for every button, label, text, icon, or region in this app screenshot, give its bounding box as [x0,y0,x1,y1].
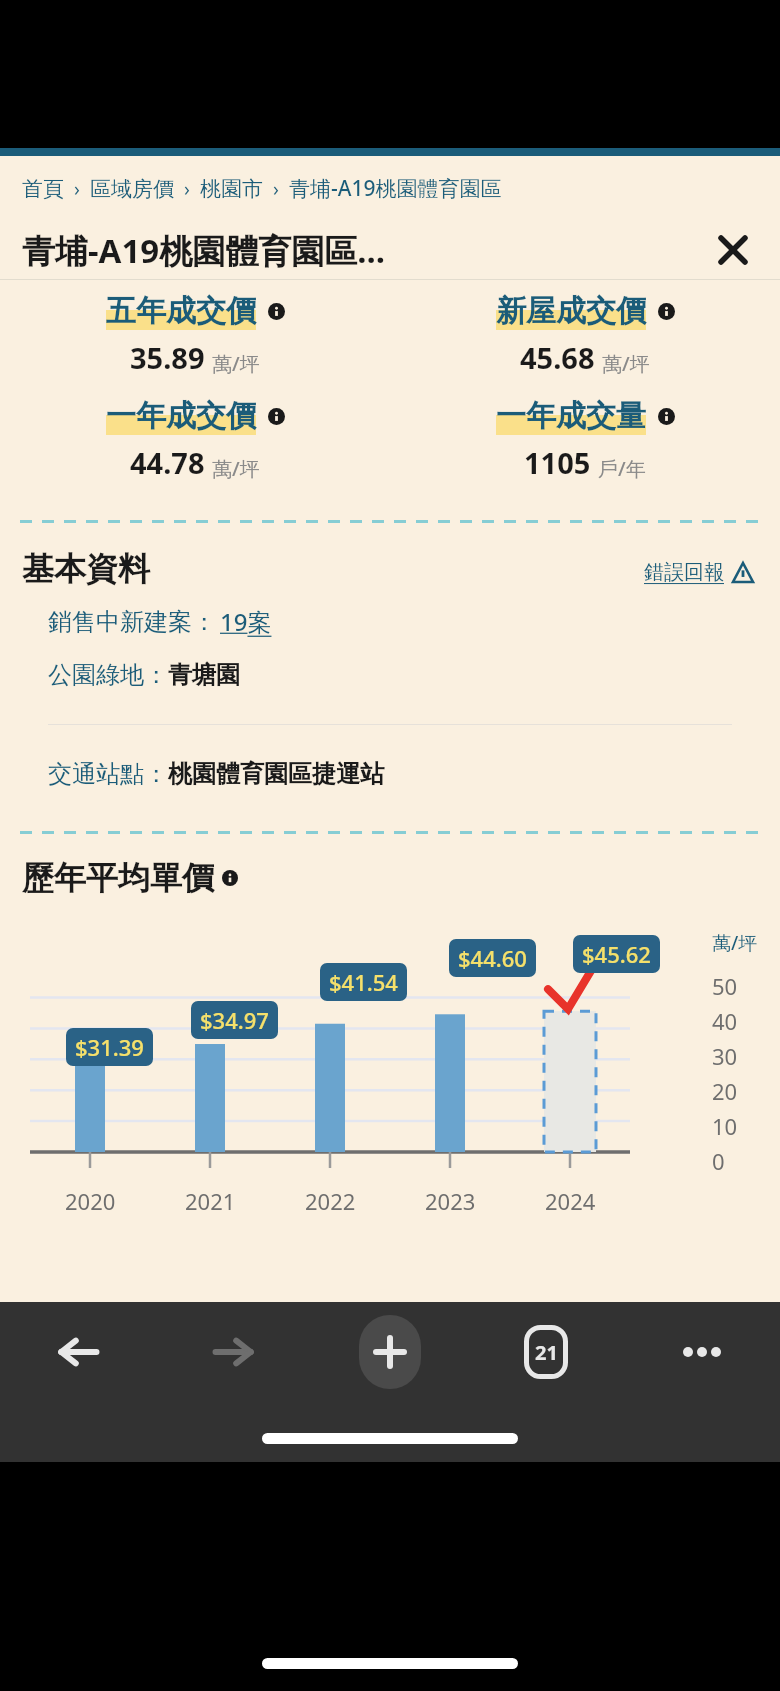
staticText: 錯誤回報 [644,560,724,585]
button[interactable]: 一年成交量 [390,395,780,484]
button[interactable]: Tabs, 21 open [468,1302,624,1402]
button[interactable]: Back [0,1302,156,1402]
staticText: 0 [712,1146,725,1176]
staticText: 2022 [305,1186,356,1216]
staticText: 2024 [545,1186,596,1216]
button[interactable]: 19案 [220,605,272,638]
staticText: 一年成交價 [106,397,256,435]
staticText: 萬/坪 [212,350,260,377]
staticText: 萬/坪 [712,930,758,956]
staticText: $45.62 [582,939,651,969]
button[interactable]: 區域房價 [90,176,174,202]
staticText: 20 [712,1076,738,1106]
button[interactable]: New tab [312,1302,468,1402]
staticText: 45.68 [520,338,595,377]
staticText: $34.97 [200,1005,269,1035]
staticText: $31.39 [75,1032,144,1062]
staticText: 青埔-A19桃園體育園區... [22,228,710,273]
staticText: 10 [712,1111,738,1141]
staticText: 萬/坪 [602,350,650,377]
staticText: 50 [712,971,738,1001]
staticText: 30 [712,1041,738,1071]
staticText: 銷售中新建案： [48,607,216,637]
staticText: › [174,176,200,202]
staticText: 萬/坪 [212,455,260,482]
staticText: 21 [535,1339,558,1366]
staticText: 2020 [65,1186,116,1216]
staticText: 公園綠地： [48,660,168,690]
staticText: 2023 [425,1186,476,1216]
staticText: 交通站點： [48,759,168,789]
staticText: › [64,176,90,202]
button[interactable]: Close [710,227,756,273]
staticText: 戶/年 [598,455,646,482]
staticText: 40 [712,1006,738,1036]
button[interactable]: 五年成交價 [0,290,390,379]
button[interactable]: 一年成交價 [0,395,390,484]
staticText: 44.78 [130,443,205,482]
button[interactable]: 桃園市 [200,176,263,202]
staticText: › [263,176,289,202]
staticText: 青塘園 [168,660,240,690]
staticText: 新屋成交價 [496,292,646,330]
button[interactable]: 新屋成交價 [390,290,780,379]
button[interactable]: 錯誤回報 [640,556,758,589]
staticText: 歷年平均單價 [22,858,214,898]
staticText: 35.89 [130,338,205,377]
staticText: 五年成交價 [106,292,256,330]
staticText: 1105 [524,443,591,482]
staticText: $41.54 [329,967,398,997]
staticText: 一年成交量 [496,397,646,435]
button[interactable]: More options [624,1302,780,1402]
button[interactable]: 青埔-A19桃園體育園區 [289,174,502,203]
button[interactable]: Forward [156,1302,312,1402]
staticText: 2021 [185,1186,236,1216]
staticText: $44.60 [458,943,527,973]
staticText: 桃園體育園區捷運站 [168,759,384,789]
staticText: 基本資料 [22,549,640,589]
button[interactable]: 首頁 [22,176,64,202]
